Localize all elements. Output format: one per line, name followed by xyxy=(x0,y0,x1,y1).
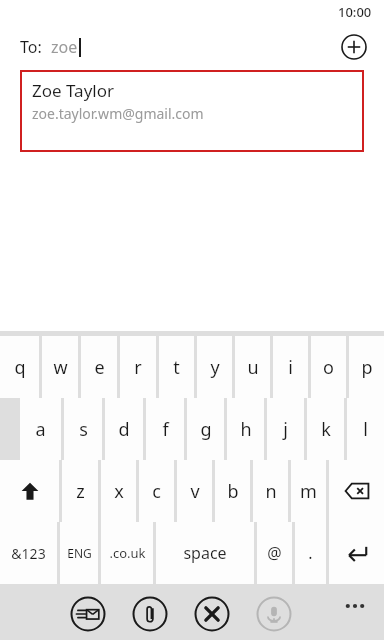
staticText: zoe.taylor.wm@gmail.com xyxy=(32,104,204,123)
staticText: p xyxy=(361,355,373,380)
button[interactable]: t xyxy=(159,336,194,398)
staticText: k xyxy=(321,417,331,442)
button[interactable]: p xyxy=(349,336,384,398)
button[interactable]: ENG xyxy=(60,522,98,584)
staticText: c xyxy=(152,479,161,504)
staticText: m xyxy=(300,479,317,504)
staticText: h xyxy=(240,417,252,442)
button[interactable]: g xyxy=(187,398,224,460)
staticText: Zoe Taylor xyxy=(32,79,115,102)
button[interactable]: a xyxy=(20,398,61,460)
button[interactable]: s xyxy=(64,398,102,460)
button[interactable]: l xyxy=(347,398,384,460)
staticText: r xyxy=(134,355,142,380)
button[interactable]: Close xyxy=(194,596,230,632)
staticText: e xyxy=(94,355,105,380)
staticText: f xyxy=(162,417,169,442)
staticText: n xyxy=(265,479,277,504)
button[interactable]: d xyxy=(105,398,143,460)
staticText: o xyxy=(323,355,334,380)
staticText: 10:00 xyxy=(338,3,372,21)
staticText: .co.uk xyxy=(109,544,146,562)
staticText: v xyxy=(190,479,200,504)
staticText: b xyxy=(227,479,239,504)
button[interactable]: w xyxy=(42,336,78,398)
staticText: ENG xyxy=(67,545,92,561)
button[interactable]: k xyxy=(307,398,344,460)
button[interactable]: &123 xyxy=(0,522,57,584)
staticText: y xyxy=(210,355,220,380)
button[interactable]: y xyxy=(197,336,232,398)
button[interactable]: j xyxy=(267,398,304,460)
staticText: zoe xyxy=(51,36,78,58)
staticText: s xyxy=(79,417,88,442)
staticText: z xyxy=(76,479,85,504)
button[interactable]: Send xyxy=(70,596,106,632)
staticText: To: xyxy=(20,36,51,58)
button[interactable]: Shift xyxy=(0,460,59,522)
button[interactable]: f xyxy=(146,398,184,460)
button[interactable]: h xyxy=(227,398,264,460)
staticText: d xyxy=(118,417,130,442)
button[interactable]: e xyxy=(81,336,117,398)
staticText: @ xyxy=(267,542,282,564)
button[interactable]: Backspace xyxy=(329,460,384,522)
button[interactable]: n xyxy=(253,460,288,522)
button[interactable]: @ xyxy=(257,522,292,584)
staticText: x xyxy=(114,479,124,504)
button[interactable]: i xyxy=(273,336,308,398)
button[interactable]: z xyxy=(62,460,98,522)
button[interactable]: m xyxy=(291,460,326,522)
button[interactable]: Voice input xyxy=(256,596,292,632)
staticText: g xyxy=(200,417,212,442)
staticText: u xyxy=(247,355,259,380)
button[interactable]: .co.uk xyxy=(101,522,153,584)
staticText: a xyxy=(35,417,46,442)
button[interactable]: Zoe Taylor xyxy=(20,70,364,152)
button[interactable]: Attach xyxy=(132,596,168,632)
button[interactable]: v xyxy=(177,460,212,522)
button[interactable]: o xyxy=(311,336,346,398)
button[interactable]: space xyxy=(156,522,254,584)
staticText: space xyxy=(183,542,227,564)
button[interactable]: . xyxy=(295,522,326,584)
staticText: w xyxy=(53,355,68,380)
button[interactable]: u xyxy=(235,336,270,398)
staticText: i xyxy=(288,355,293,380)
button[interactable]: r xyxy=(120,336,156,398)
staticText: &123 xyxy=(11,544,46,563)
button[interactable]: b xyxy=(215,460,250,522)
button[interactable]: More options xyxy=(340,591,370,621)
button[interactable]: q xyxy=(0,336,39,398)
staticText: q xyxy=(14,355,26,380)
staticText: l xyxy=(363,417,368,442)
button[interactable]: Enter xyxy=(329,522,384,584)
button[interactable]: x xyxy=(101,460,136,522)
staticText: . xyxy=(308,542,313,564)
staticText: j xyxy=(283,417,288,442)
button[interactable]: Add recipient xyxy=(340,33,368,61)
staticText: t xyxy=(173,355,180,380)
button[interactable]: c xyxy=(139,460,174,522)
